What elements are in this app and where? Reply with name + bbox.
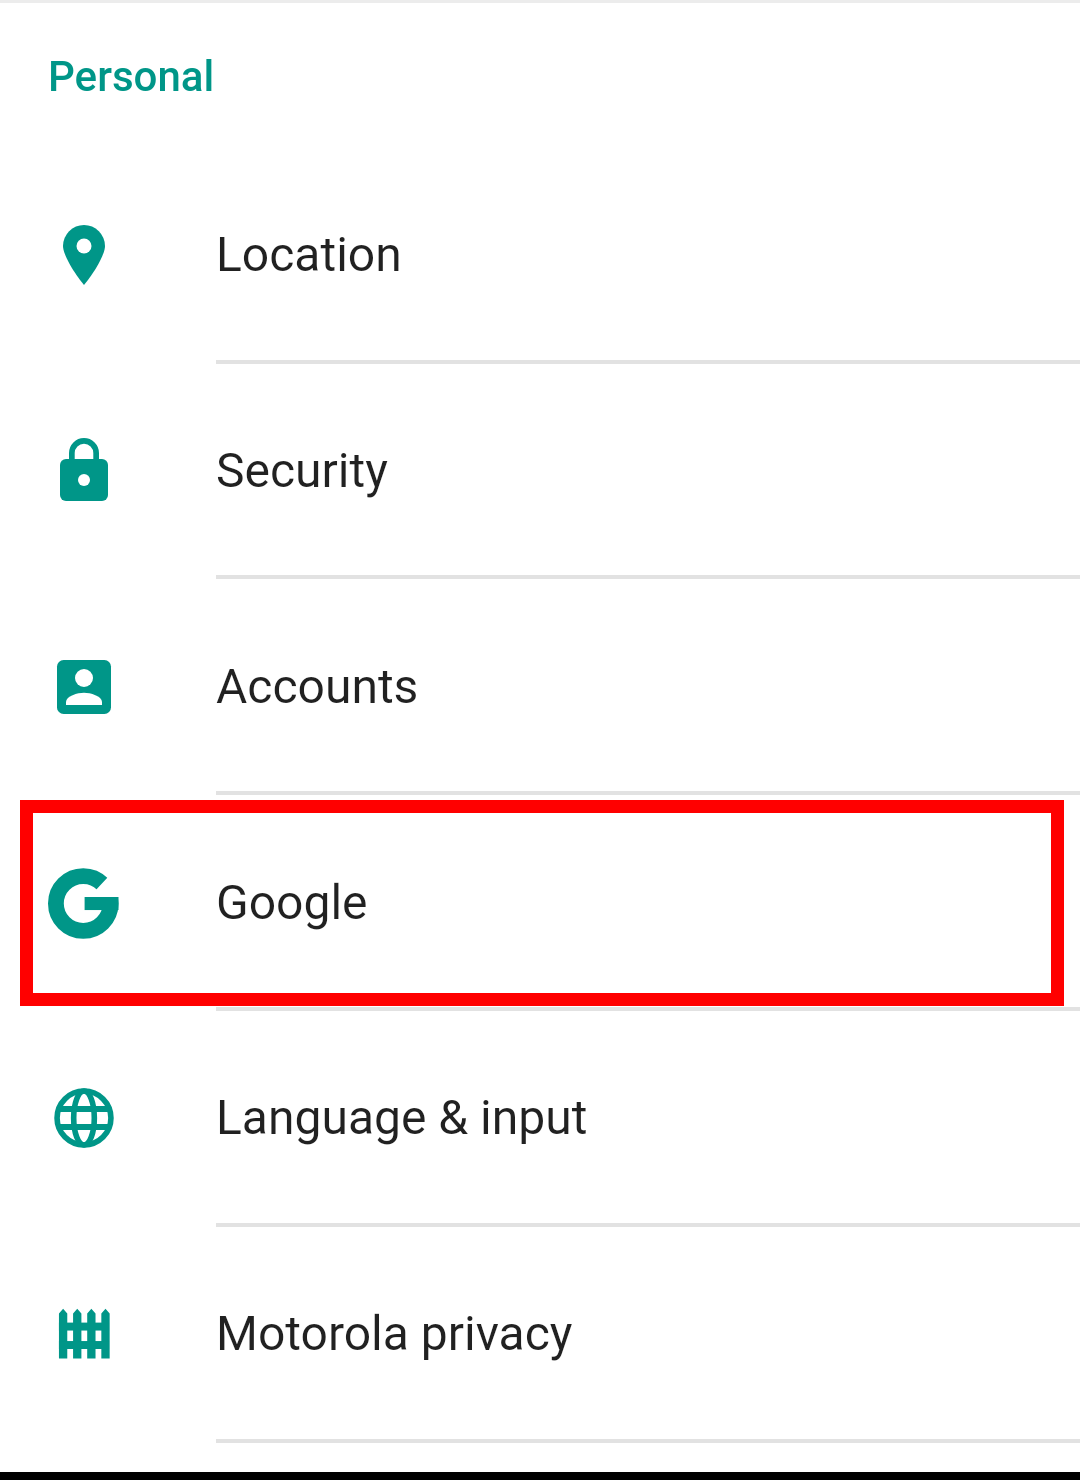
staticText: Security	[216, 442, 388, 498]
other: Language and input	[48, 1082, 120, 1154]
button[interactable]: Motorola privacy	[0, 1224, 1080, 1440]
button[interactable]: Language and input	[0, 1008, 1080, 1224]
button[interactable]: Google	[0, 793, 1080, 1009]
other: Motorola privacy	[48, 1298, 120, 1370]
staticText: Google	[216, 874, 368, 930]
staticText: Accounts	[216, 658, 419, 714]
staticText: Language & input	[216, 1089, 588, 1145]
staticText: Location	[216, 226, 402, 282]
button[interactable]: Security	[0, 361, 1080, 577]
other: Accounts	[48, 651, 120, 723]
other: Location	[48, 219, 120, 291]
staticText: Motorola privacy	[216, 1305, 573, 1361]
button[interactable]: Location	[0, 145, 1080, 361]
other: Security	[48, 435, 120, 507]
staticText: Personal	[48, 52, 215, 101]
other: Google	[48, 867, 120, 939]
button[interactable]: Accounts	[0, 577, 1080, 793]
